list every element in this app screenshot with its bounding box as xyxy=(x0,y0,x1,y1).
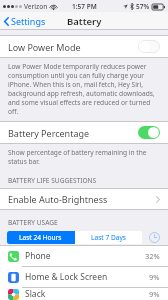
staticText: Home & Lock Screen xyxy=(25,271,108,283)
staticText: Enable Auto-Brightness xyxy=(8,193,108,205)
staticText: Show percentage of battery remaining in … xyxy=(8,148,160,166)
staticText: Slack xyxy=(25,288,46,300)
staticText: Last 24 Hours xyxy=(19,233,62,242)
button[interactable]: Low Power Mode xyxy=(0,36,168,57)
staticText: 9% xyxy=(149,289,160,299)
button[interactable]: Last 24 Hours xyxy=(7,231,74,244)
staticText: 1:57 PM xyxy=(72,2,97,11)
button[interactable]: Slack xyxy=(0,288,168,300)
staticText: Battery Percentage xyxy=(8,127,90,139)
button[interactable]: Enable Auto-Brightness xyxy=(0,189,168,209)
staticText: 9% xyxy=(149,272,160,282)
staticText: Phone xyxy=(25,250,51,262)
button[interactable]: Battery Percentage xyxy=(0,122,168,143)
button[interactable]: Settings xyxy=(0,12,52,30)
button[interactable] xyxy=(138,40,160,53)
button[interactable]: Show battery usage time xyxy=(148,231,161,244)
staticText: Verizon xyxy=(24,2,48,11)
staticText: Last 7 Days xyxy=(91,233,126,242)
button[interactable]: Home & Lock Screen xyxy=(0,267,168,287)
staticText: 57% xyxy=(136,2,150,11)
staticText: 32% xyxy=(145,251,160,261)
button[interactable] xyxy=(138,126,160,139)
staticText: Low Power Mode xyxy=(8,41,81,53)
staticText: Battery xyxy=(67,15,102,28)
staticText: Settings xyxy=(11,15,46,27)
staticText: BATTERY USAGE xyxy=(8,218,58,227)
button[interactable]: Last 7 Days xyxy=(75,231,142,244)
button[interactable]: Phone xyxy=(0,246,168,266)
staticText: Low Power Mode temporarily reduces power… xyxy=(8,62,160,116)
staticText: BATTERY LIFE SUGGESTIONS xyxy=(8,176,97,185)
